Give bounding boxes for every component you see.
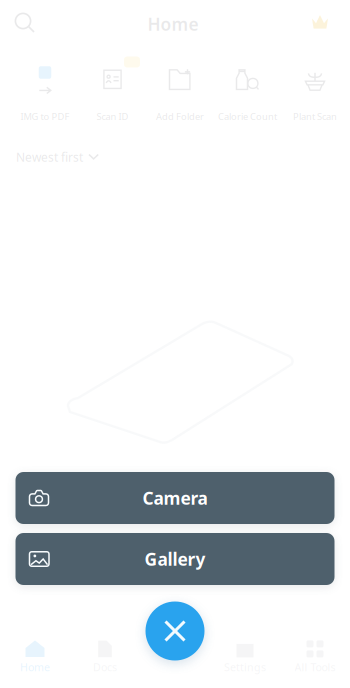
button[interactable]: Settings bbox=[210, 643, 280, 673]
staticText: Camera bbox=[142, 486, 207, 509]
staticText: Add Folder bbox=[156, 110, 204, 123]
staticText: Newest first bbox=[16, 149, 83, 165]
staticText: IMG to PDF bbox=[20, 110, 69, 123]
button[interactable]: IMG to PDF bbox=[11, 65, 79, 123]
button[interactable]: Close bbox=[145, 601, 204, 660]
button[interactable]: Camera bbox=[15, 472, 334, 524]
staticText: Scan ID bbox=[96, 110, 128, 123]
button[interactable]: Gallery bbox=[15, 533, 334, 585]
button[interactable]: Scan ID bbox=[79, 65, 146, 123]
staticText: Gallery bbox=[144, 547, 205, 570]
button[interactable]: Home bbox=[0, 643, 70, 673]
staticText: Home bbox=[147, 12, 198, 35]
staticText: Home bbox=[20, 660, 50, 674]
staticText: Plant Scan bbox=[293, 110, 337, 123]
button[interactable]: Plant Scan bbox=[281, 65, 349, 123]
button[interactable]: Calorie Count bbox=[214, 65, 281, 123]
staticText: Calorie Count bbox=[218, 110, 277, 123]
button[interactable]: Add Folder bbox=[146, 65, 214, 123]
